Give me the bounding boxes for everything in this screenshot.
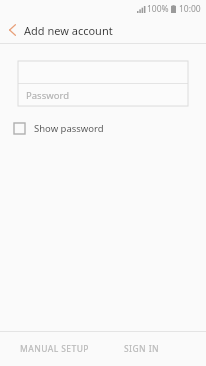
button[interactable]: Navigate up bbox=[0, 17, 24, 43]
button[interactable]: Password bbox=[18, 84, 188, 106]
button[interactable]: Show password bbox=[14, 117, 104, 139]
button[interactable]: MANUAL SETUP bbox=[0, 332, 120, 366]
staticText: Add new account bbox=[24, 23, 113, 38]
button[interactable] bbox=[18, 61, 188, 83]
staticText: Password bbox=[26, 89, 69, 102]
staticText: 10:00 bbox=[179, 3, 201, 15]
staticText: Show password bbox=[34, 122, 104, 135]
staticText: SIGN IN bbox=[124, 343, 160, 355]
staticText: 100% bbox=[147, 3, 169, 15]
staticText: MANUAL SETUP bbox=[20, 343, 89, 355]
button[interactable]: SIGN IN bbox=[120, 332, 206, 366]
